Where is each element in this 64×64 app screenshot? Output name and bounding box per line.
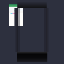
button[interactable]: Open navigation menu bbox=[9, 5, 11, 7]
button[interactable]: More options bbox=[21, 5, 23, 7]
button[interactable] bbox=[11, 5, 19, 7]
button[interactable]: Search bbox=[19, 5, 21, 7]
button[interactable] bbox=[9, 9, 23, 11]
